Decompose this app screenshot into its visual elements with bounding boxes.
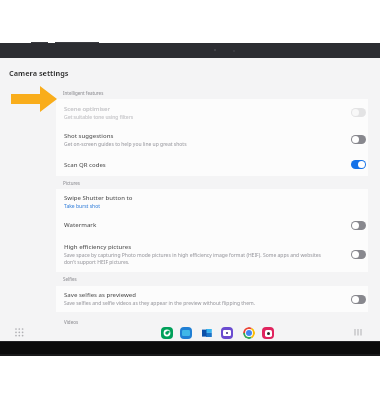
button[interactable]: Scan QR codes	[56, 153, 368, 176]
button[interactable]: All apps	[15, 328, 24, 337]
button[interactable]: Watermark	[56, 214, 368, 236]
staticText: Camera settings	[9, 68, 69, 78]
button[interactable]: Messages	[180, 327, 192, 339]
button[interactable]: Toggle	[351, 295, 366, 304]
staticText: Intelligent features	[63, 90, 104, 96]
button[interactable]: Instagram	[262, 327, 274, 339]
button[interactable]: Outlook	[202, 328, 212, 338]
button[interactable]: Toggle	[351, 160, 366, 169]
button[interactable]: Toggle	[351, 221, 366, 230]
staticText: Save space by capturing Photo mode pictu…	[64, 252, 330, 265]
staticText: Get on-screen guides to help you line up…	[64, 141, 187, 148]
staticText: Save selfies as previewed	[64, 291, 137, 299]
button[interactable]: High efficiency pictures	[56, 236, 368, 272]
staticText: Get suitable tone using filters	[64, 114, 134, 121]
button[interactable]: Scene optimiser	[56, 99, 368, 126]
staticText: Pictures	[63, 180, 80, 186]
staticText: Watermark	[64, 221, 97, 229]
button[interactable]: Phone	[161, 327, 173, 339]
staticText: Swipe Shutter button to	[64, 194, 133, 202]
staticText: High efficiency pictures	[64, 243, 132, 251]
button[interactable]: Toggle	[351, 250, 366, 259]
button[interactable]: Toggle	[351, 135, 366, 144]
button[interactable]: Toggle	[351, 108, 366, 117]
button[interactable]: Recent apps	[354, 328, 363, 337]
staticText: Shot suggestions	[64, 132, 114, 140]
staticText: Scene optimiser	[64, 105, 110, 113]
button[interactable]: Shot suggestions	[56, 126, 368, 153]
button[interactable]: Swipe Shutter button to	[56, 189, 368, 214]
staticText: Take burst shot	[64, 203, 101, 210]
staticText: Selfies	[63, 276, 77, 282]
staticText: Videos	[64, 319, 79, 325]
staticText: Scan QR codes	[64, 161, 106, 169]
button[interactable]: Save selfies as previewed	[56, 286, 368, 312]
staticText: Save selfies and selfie videos as they a…	[64, 300, 256, 307]
button[interactable]: Video call	[221, 327, 233, 339]
button[interactable]: Chrome	[243, 327, 255, 339]
